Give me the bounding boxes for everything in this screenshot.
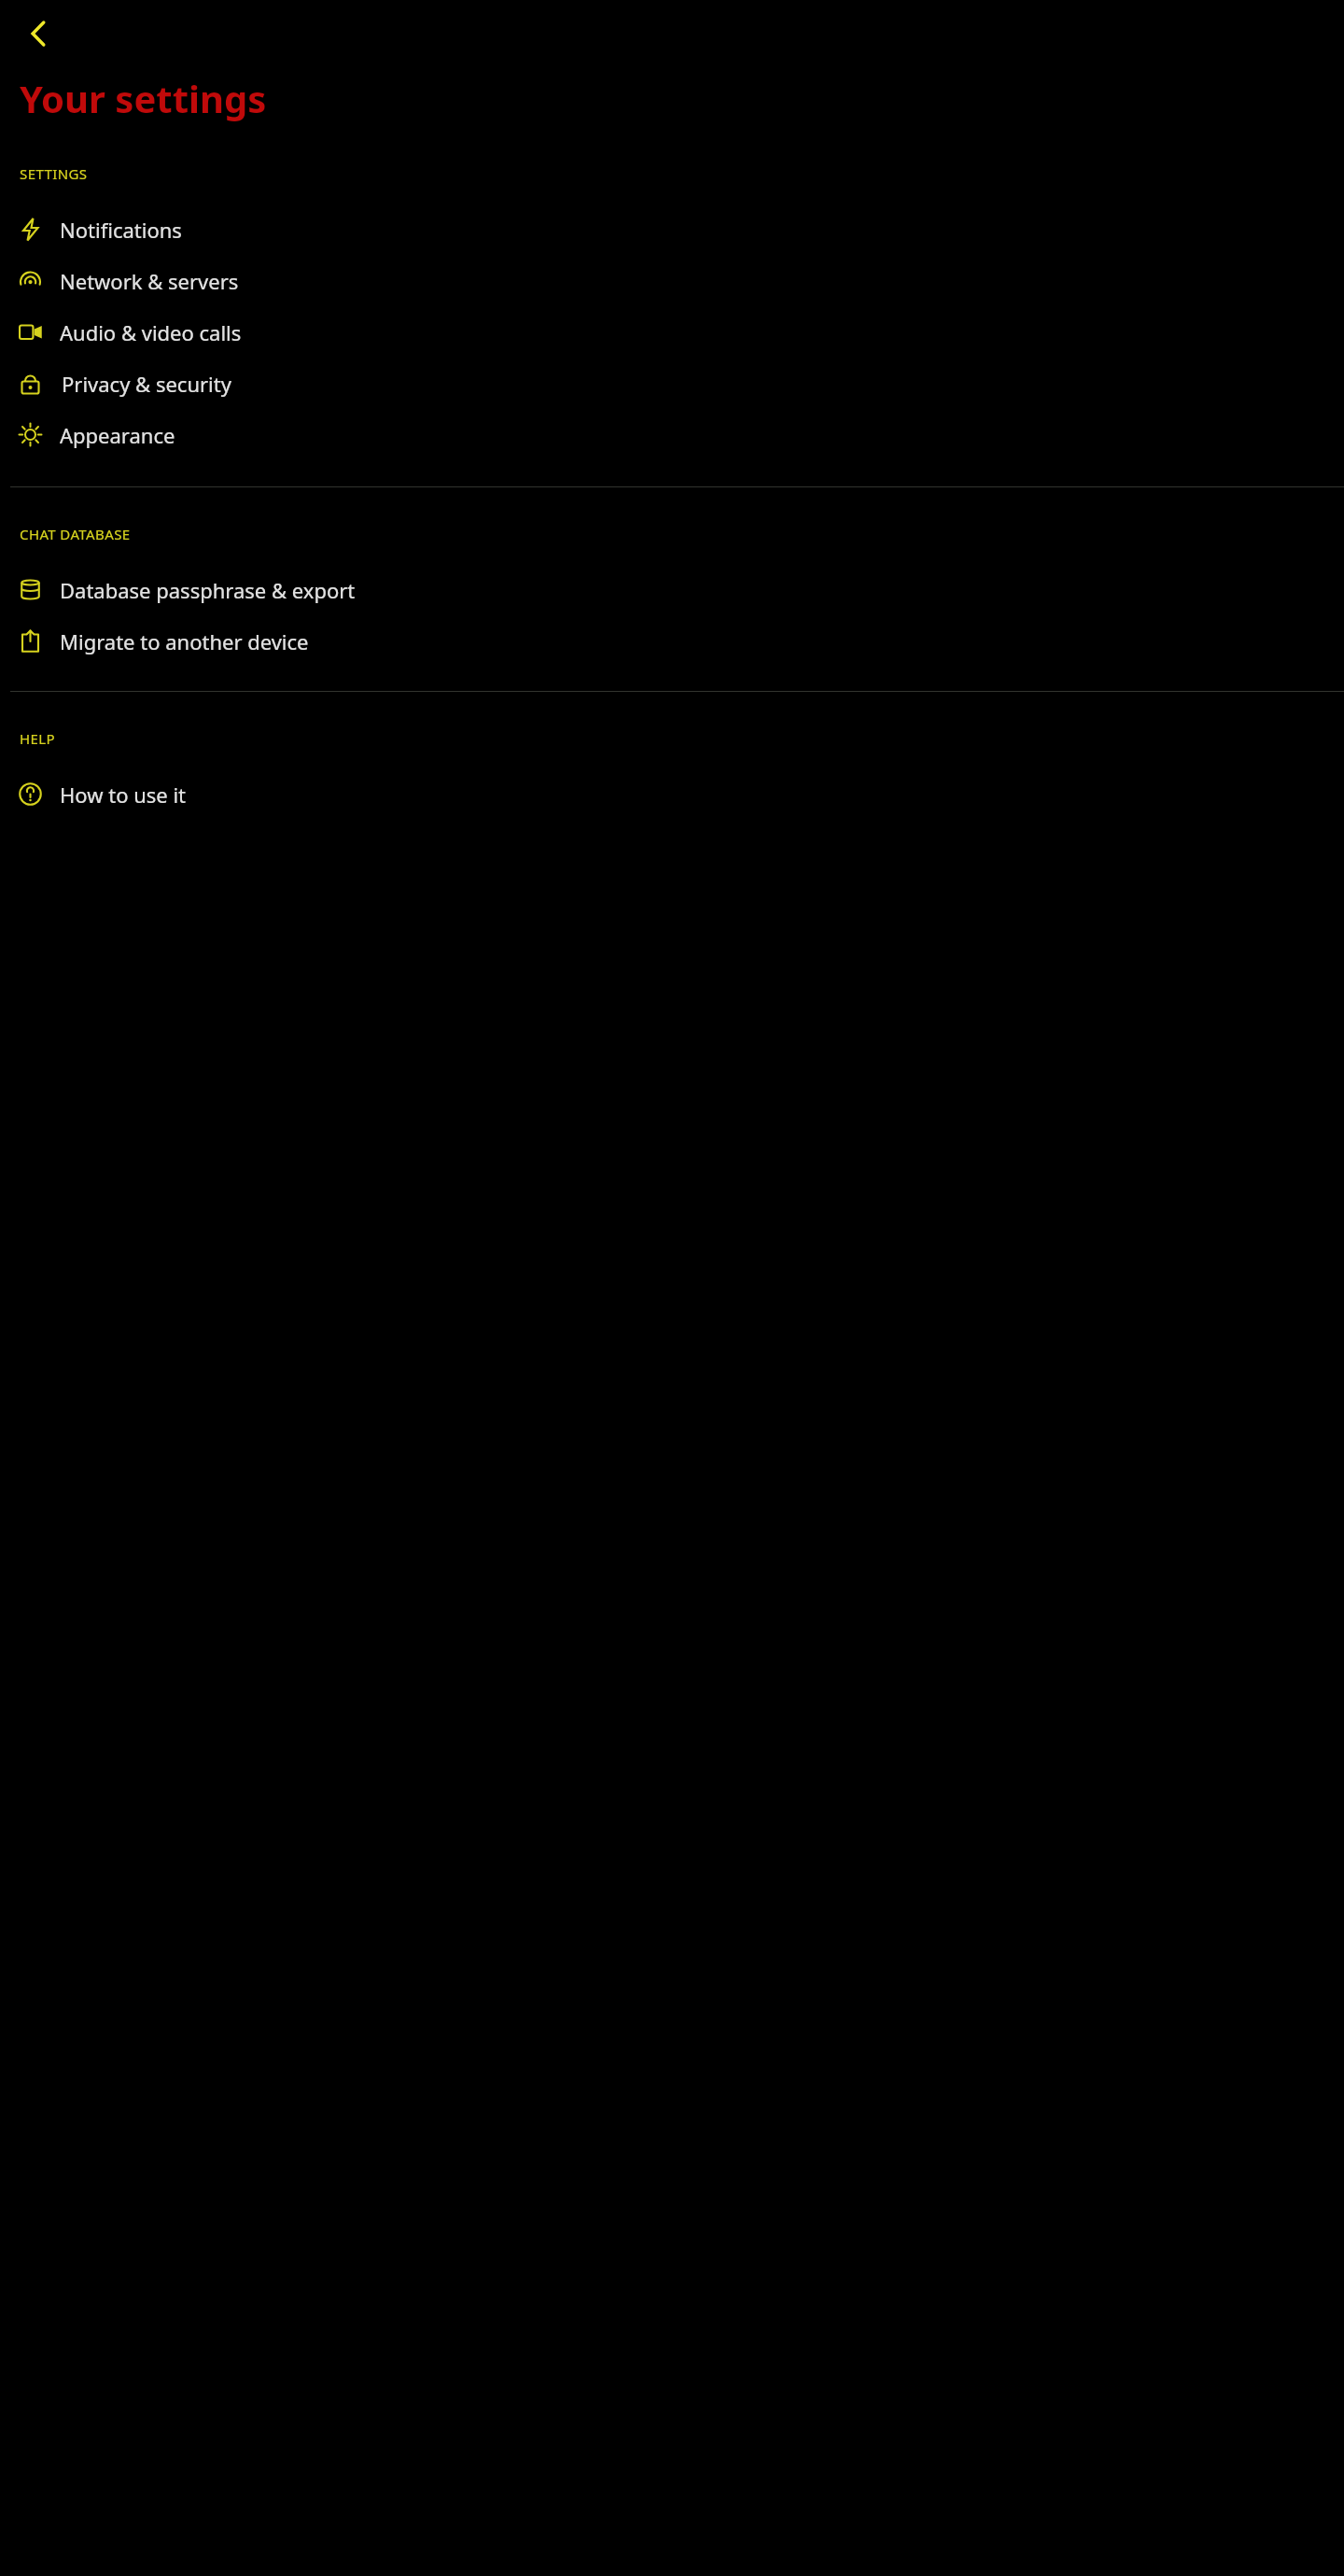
staticText: HELP xyxy=(20,729,55,748)
button[interactable]: Database passphrase & export xyxy=(0,564,1344,615)
button[interactable]: Network & servers xyxy=(0,255,1344,306)
button[interactable]: Appearance xyxy=(0,409,1344,460)
button[interactable]: Privacy & security xyxy=(0,358,1344,409)
staticText: Privacy & security xyxy=(62,370,231,398)
staticText: Notifications xyxy=(60,216,182,244)
staticText: Audio & video calls xyxy=(60,318,242,346)
button[interactable]: How to use it xyxy=(0,768,1344,820)
staticText: Database passphrase & export xyxy=(60,576,356,604)
button[interactable]: Notifications xyxy=(0,204,1344,255)
button[interactable]: Audio & video calls xyxy=(0,306,1344,358)
button[interactable]: Migrate to another device xyxy=(0,615,1344,667)
staticText: CHAT DATABASE xyxy=(20,525,131,543)
staticText: Your settings xyxy=(20,73,267,123)
staticText: SETTINGS xyxy=(20,164,88,183)
staticText: Network & servers xyxy=(60,267,239,295)
button[interactable]: Back xyxy=(13,7,65,60)
staticText: Appearance xyxy=(60,421,175,449)
staticText: Migrate to another device xyxy=(60,627,309,655)
staticText: How to use it xyxy=(60,781,187,809)
